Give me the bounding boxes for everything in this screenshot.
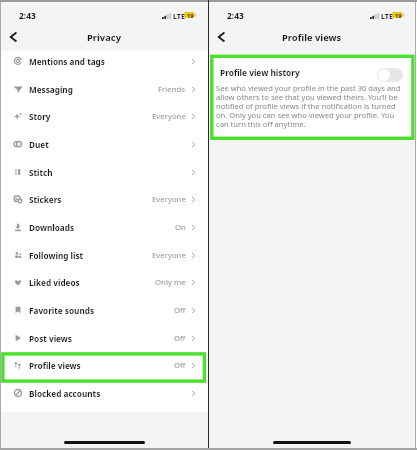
staticText: Profile view history [220, 67, 300, 78]
button[interactable]: Stitch [1, 158, 208, 186]
staticText: Mentions and tags [29, 56, 105, 67]
staticText: Favorite sounds [29, 305, 95, 316]
staticText: LTE [173, 11, 186, 21]
staticText: 19 [395, 12, 402, 18]
button[interactable]: Post views [1, 324, 208, 352]
button[interactable]: Back [211, 27, 231, 47]
staticText: Stickers [29, 194, 62, 205]
staticText: LTE [381, 11, 394, 21]
button[interactable]: Messaging [1, 75, 208, 103]
button[interactable]: Story [1, 102, 208, 130]
staticText: Downloads [29, 222, 75, 233]
staticText: Privacy [87, 31, 122, 44]
staticText: Off [174, 333, 186, 344]
staticText: Blocked accounts [29, 388, 101, 399]
button[interactable]: Mentions and tags [1, 47, 208, 75]
staticText: Liked videos [29, 277, 80, 288]
staticText: Profile views [29, 360, 81, 371]
staticText: Duet [29, 139, 49, 150]
staticText: On [175, 222, 186, 233]
button[interactable]: Duet [1, 130, 208, 158]
button[interactable]: Following list [1, 241, 208, 269]
button[interactable]: Profile views [1, 351, 208, 379]
staticText: Post views [29, 333, 72, 344]
staticText: See who viewed your profile in the past … [216, 83, 401, 129]
staticText: Profile views [282, 31, 342, 44]
staticText: 2:43 [227, 10, 244, 21]
staticText: Off [174, 305, 186, 316]
staticText: Everyone [152, 111, 186, 122]
staticText: Stitch [29, 167, 53, 178]
staticText: 2:43 [19, 10, 36, 21]
button[interactable]: Downloads [1, 213, 208, 241]
button[interactable]: Blocked accounts [1, 379, 208, 407]
staticText: Only me [155, 277, 186, 288]
button[interactable]: Liked videos [1, 268, 208, 296]
staticText: Everyone [152, 250, 186, 261]
staticText: Following list [29, 250, 84, 261]
button[interactable]: Favorite sounds [1, 296, 208, 324]
button[interactable]: Stickers [1, 185, 208, 213]
button[interactable]: Profile view history toggle [377, 68, 403, 82]
staticText: Everyone [152, 194, 186, 205]
staticText: 19 [187, 12, 194, 18]
staticText: Messaging [29, 84, 73, 95]
staticText: Off [174, 360, 186, 371]
staticText: Friends [158, 84, 186, 95]
staticText: Story [29, 111, 51, 122]
button[interactable]: Back [3, 27, 23, 47]
